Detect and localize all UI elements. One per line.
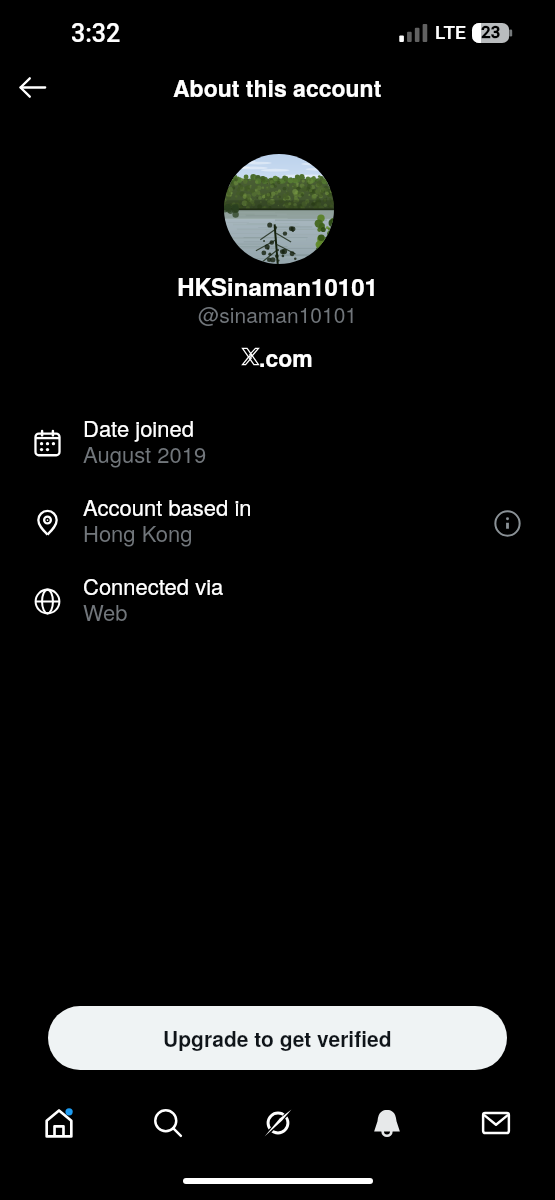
staticText: LTE	[435, 21, 466, 43]
button[interactable]: Account based in	[0, 483, 555, 562]
button[interactable]: Connected via	[0, 562, 555, 641]
staticText: .com	[259, 341, 313, 374]
staticText: HKSinaman10101	[0, 269, 555, 303]
staticText: About this account	[173, 71, 382, 104]
button[interactable]: Messages	[446, 1092, 546, 1154]
button[interactable]: Date joined	[0, 404, 555, 483]
button[interactable]: Home	[9, 1092, 109, 1154]
button[interactable]: Search	[118, 1092, 218, 1154]
staticText: Hong Kong	[83, 517, 193, 549]
staticText: August 2019	[83, 438, 207, 470]
staticText: Connected via	[83, 570, 224, 602]
button[interactable]: Upgrade to get verified	[48, 1006, 507, 1070]
staticText: 23	[481, 22, 501, 42]
staticText: 3:32	[71, 19, 121, 48]
staticText: Web	[83, 596, 128, 628]
staticText: Upgrade to get verified	[163, 1023, 392, 1053]
staticText: Date joined	[83, 412, 194, 444]
staticText: Account based in	[83, 491, 252, 523]
button[interactable]: Back	[9, 64, 55, 110]
button[interactable]	[224, 154, 334, 264]
button[interactable]: More info	[485, 501, 529, 545]
staticText: @sinaman10101	[0, 299, 555, 329]
button[interactable]: Notifications	[337, 1092, 437, 1154]
button[interactable]: Grok	[228, 1092, 328, 1154]
